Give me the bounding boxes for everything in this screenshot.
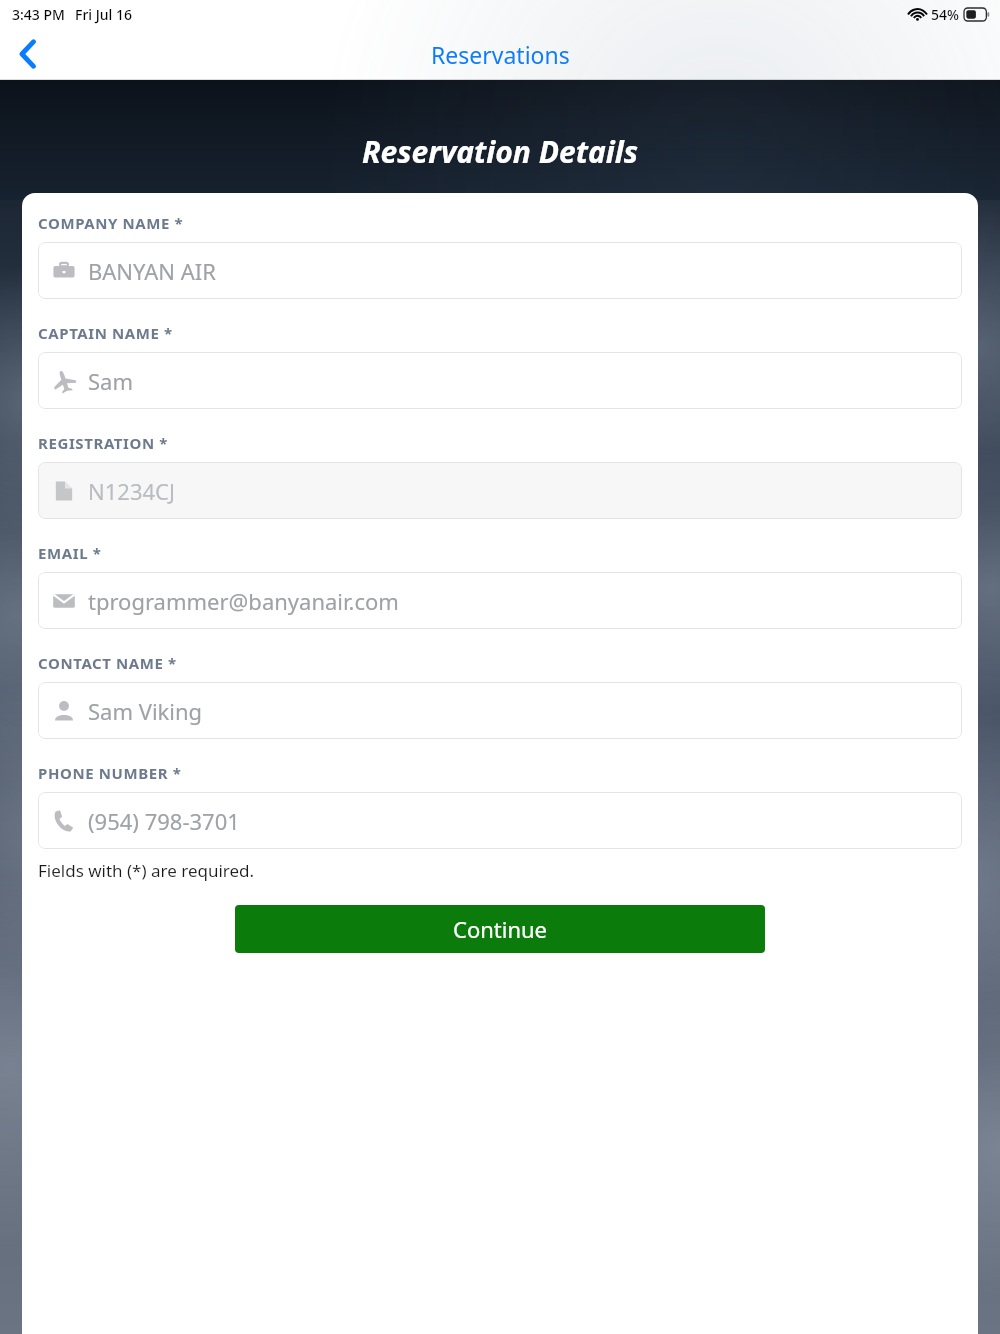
staticText: CONTACT NAME * [38,653,177,673]
staticText: Sam Viking [88,696,203,726]
staticText: 3:43 PM [12,5,65,24]
button[interactable]: Continue [235,905,765,953]
staticText: Reservation Details [362,131,639,172]
staticText: 54% [931,5,959,24]
staticText: Fri Jul 16 [75,5,133,24]
staticText: Sam [88,366,133,396]
staticText: CAPTAIN NAME * [38,323,173,343]
staticText: N1234CJ [88,476,175,506]
staticText: (954) 798-3701 [88,806,240,836]
button[interactable]: (954) 798-3701 [38,792,962,849]
staticText: Fields with (*) are required. [38,859,255,882]
staticText: PHONE NUMBER * [38,763,182,783]
staticText: BANYAN AIR [88,256,216,286]
staticText: REGISTRATION * [38,433,169,453]
staticText: EMAIL * [38,543,102,563]
staticText: tprogrammer@banyanair.com [88,586,399,616]
staticText: Reservations [431,39,570,70]
button[interactable]: Back [4,30,52,78]
button[interactable]: N1234CJ [38,462,962,519]
button[interactable]: BANYAN AIR [38,242,962,299]
staticText: COMPANY NAME * [38,213,184,233]
button[interactable]: Sam Viking [38,682,962,739]
button[interactable]: Sam [38,352,962,409]
staticText: Continue [453,914,548,944]
button[interactable]: tprogrammer@banyanair.com [38,572,962,629]
